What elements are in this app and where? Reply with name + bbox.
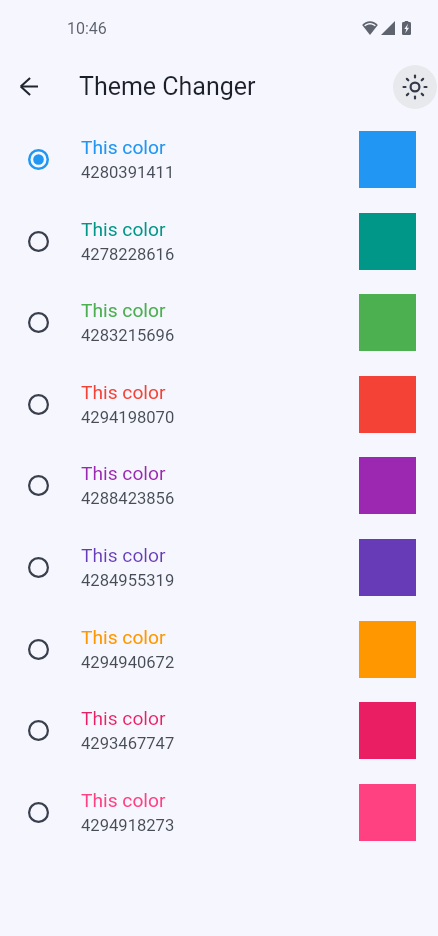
staticText: Theme Changer <box>79 72 256 101</box>
button[interactable]: This color <box>0 213 438 295</box>
button[interactable]: This color <box>0 457 438 539</box>
staticText: 4293467747 <box>81 734 175 753</box>
button[interactable]: This color <box>0 784 438 866</box>
staticText: 4294198070 <box>81 408 175 427</box>
staticText: 4280391411 <box>81 163 175 182</box>
button[interactable]: This color <box>0 539 438 621</box>
staticText: This color <box>81 626 166 649</box>
staticText: 10:46 <box>67 19 107 38</box>
staticText: 4294918273 <box>81 816 175 835</box>
staticText: 4294940672 <box>81 653 175 672</box>
button[interactable]: This color <box>0 294 438 376</box>
staticText: 4283215696 <box>81 326 175 345</box>
staticText: This color <box>81 707 166 730</box>
staticText: This color <box>81 299 166 322</box>
staticText: This color <box>81 218 166 241</box>
staticText: This color <box>81 544 166 567</box>
button[interactable]: This color <box>0 621 438 703</box>
button[interactable]: This color <box>0 376 438 458</box>
staticText: This color <box>81 789 166 812</box>
button[interactable]: This color <box>0 131 438 213</box>
staticText: This color <box>81 381 166 404</box>
button[interactable]: Toggle brightness <box>393 65 437 109</box>
staticText: 4278228616 <box>81 245 175 264</box>
staticText: 4288423856 <box>81 489 175 508</box>
staticText: 4284955319 <box>81 571 175 590</box>
staticText: This color <box>81 136 166 159</box>
staticText: This color <box>81 462 166 485</box>
button[interactable]: This color <box>0 702 438 784</box>
button[interactable]: Back <box>5 62 53 110</box>
